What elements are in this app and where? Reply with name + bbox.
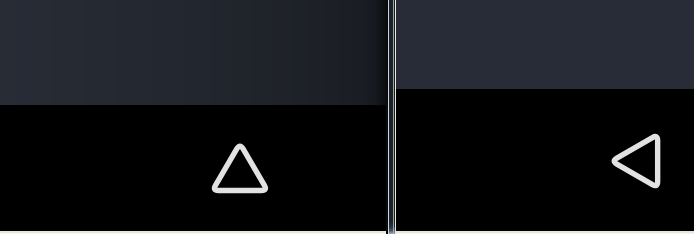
button[interactable]: Back [611, 134, 658, 189]
button[interactable]: Back [211, 144, 268, 192]
